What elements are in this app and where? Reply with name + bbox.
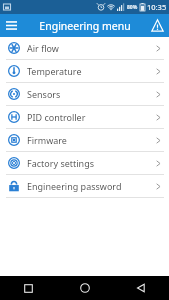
button[interactable]: Temperature: [0, 60, 169, 82]
button[interactable]: Open navigation menu: [0, 14, 23, 37]
button[interactable]: Home: [57, 276, 113, 300]
staticText: Engineering password: [27, 180, 155, 192]
staticText: PID controller: [27, 111, 155, 123]
button[interactable]: Back: [113, 276, 169, 300]
button[interactable]: Warnings: [146, 14, 169, 37]
staticText: Sensors: [27, 88, 155, 100]
button[interactable]: Factory settings: [0, 152, 169, 174]
button[interactable]: Engineering password: [0, 175, 169, 197]
button[interactable]: Recent apps: [0, 276, 57, 300]
staticText: Engineering menu: [39, 19, 131, 33]
staticText: 10:35: [147, 2, 167, 12]
button[interactable]: Air flow: [0, 37, 169, 59]
staticText: Temperature: [27, 65, 155, 77]
staticText: 80%: [127, 4, 138, 11]
staticText: Factory settings: [27, 157, 155, 169]
button[interactable]: Sensors: [0, 83, 169, 105]
staticText: Air flow: [27, 42, 155, 54]
button[interactable]: Firmware: [0, 129, 169, 151]
staticText: Firmware: [27, 134, 155, 146]
button[interactable]: PID controller: [0, 106, 169, 128]
